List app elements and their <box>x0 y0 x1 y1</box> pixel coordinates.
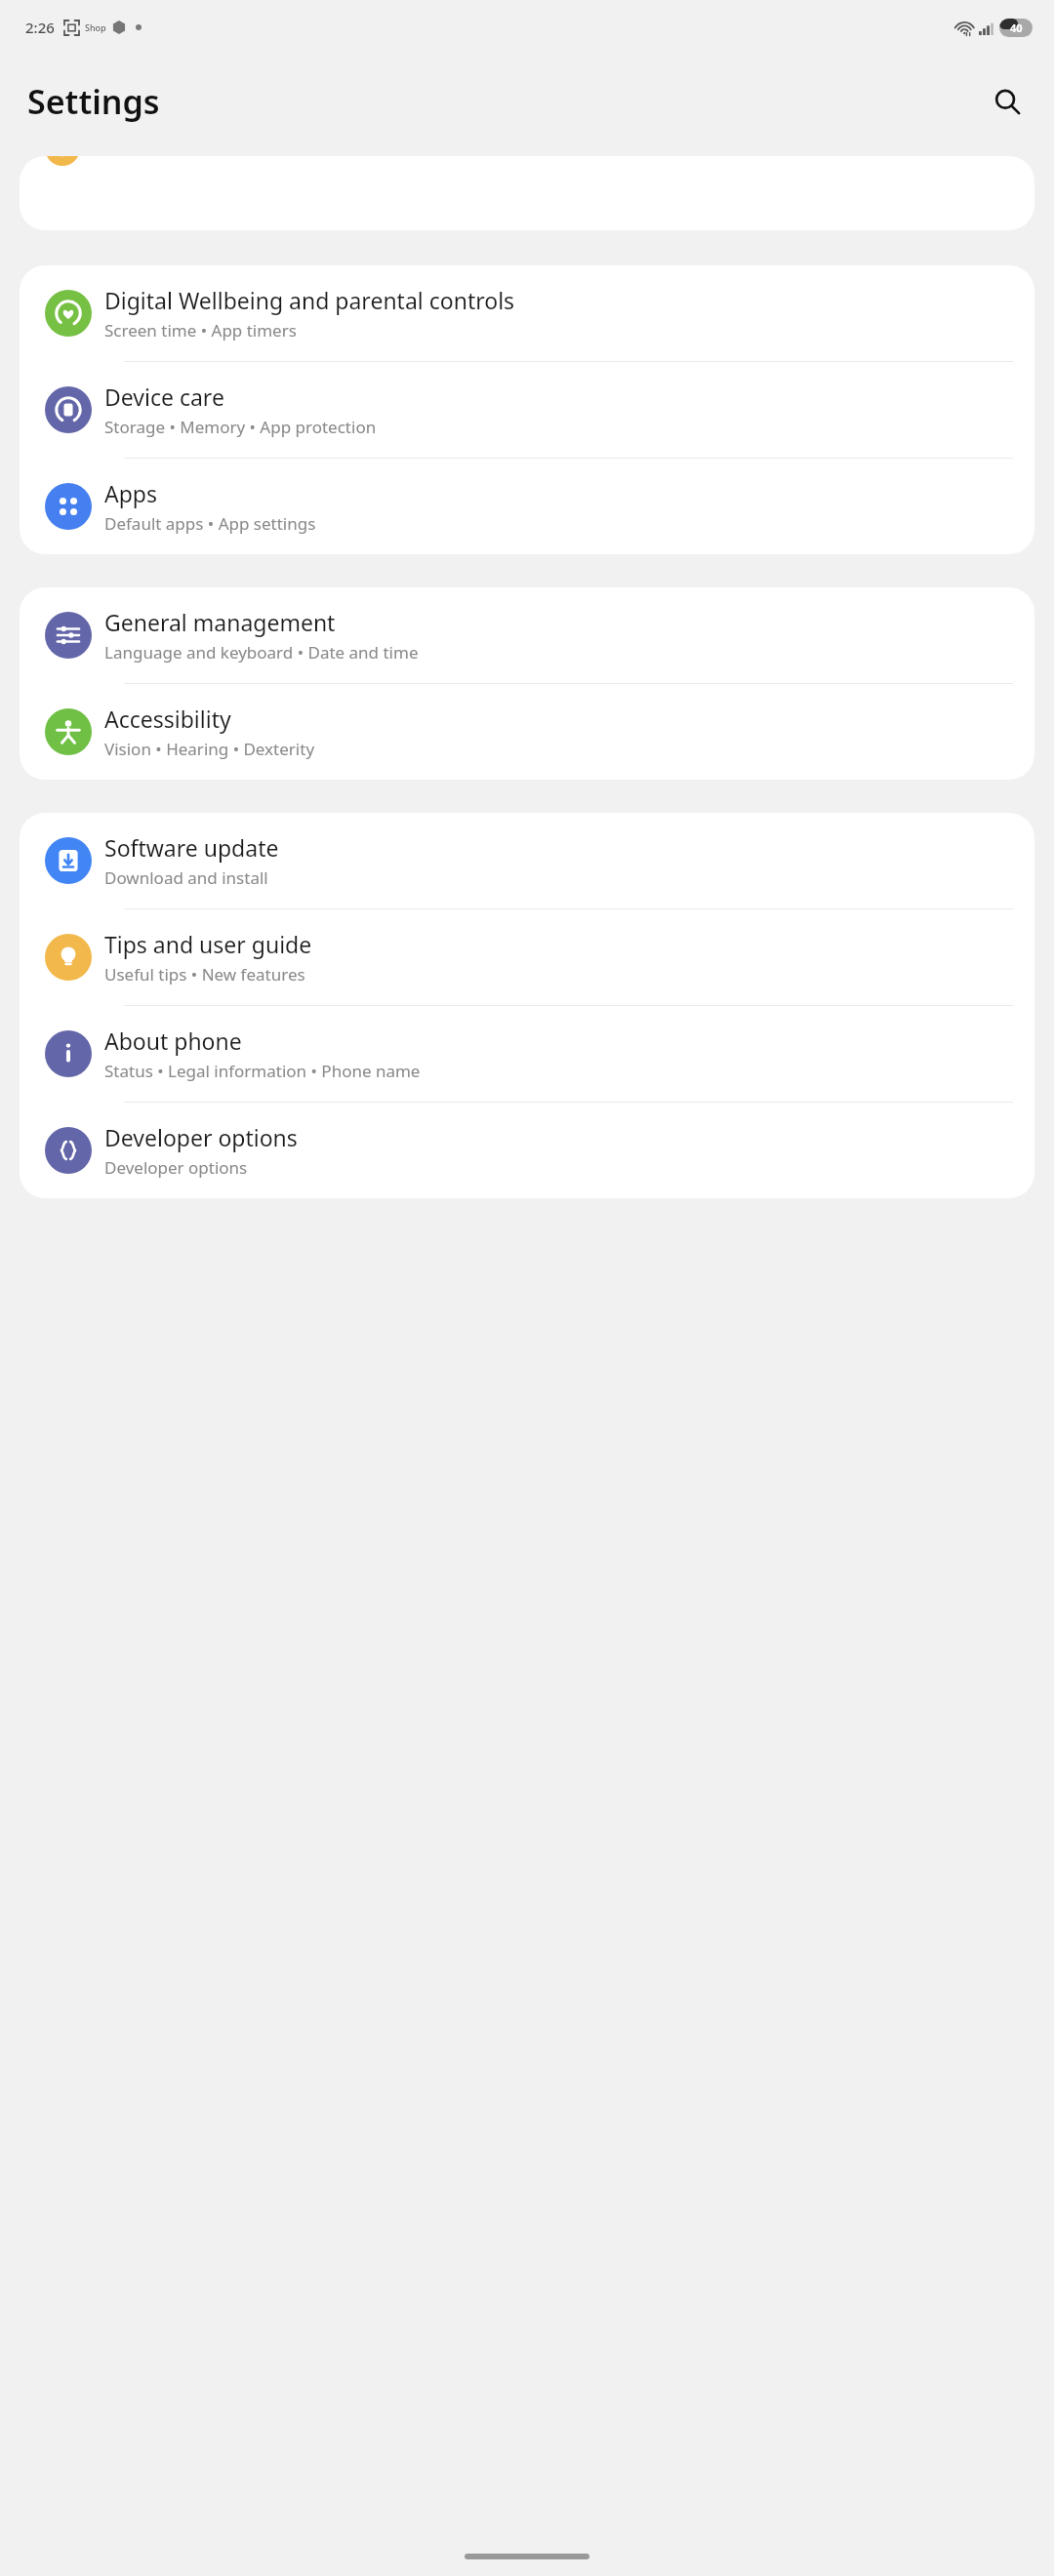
staticText: 2:26 <box>25 18 55 37</box>
staticText: Status • Legal information • Phone name <box>104 1060 421 1082</box>
staticText: Apps <box>104 478 158 508</box>
button[interactable]: About phone <box>20 1006 1034 1102</box>
staticText: Settings <box>27 79 160 124</box>
staticText: Developer options <box>104 1156 248 1179</box>
staticText: Download and install <box>104 866 268 889</box>
button[interactable]: Search <box>982 76 1033 127</box>
button[interactable]: Device care <box>20 362 1034 458</box>
button[interactable]: Tips and user guide <box>20 909 1034 1005</box>
staticText: Shop <box>85 21 106 33</box>
staticText: Default apps • App settings <box>104 512 316 535</box>
staticText: Useful tips • New features <box>104 963 305 986</box>
staticText: General management <box>104 607 336 637</box>
staticText: Software update <box>104 832 279 863</box>
staticText: Language and keyboard • Date and time <box>104 641 419 664</box>
button[interactable]: Accessibility <box>20 684 1034 780</box>
staticText: About phone <box>104 1026 242 1056</box>
button[interactable]: Advanced features <box>20 156 1034 185</box>
staticText: 40 <box>1010 20 1023 35</box>
staticText: Device care <box>104 382 224 412</box>
staticText: Screen time • App timers <box>104 319 297 342</box>
button[interactable]: Digital Wellbeing and parental controls <box>20 265 1034 361</box>
staticText: Storage • Memory • App protection <box>104 416 377 438</box>
staticText: Accessibility <box>104 704 231 734</box>
button[interactable]: General management <box>20 587 1034 683</box>
staticText: Tips and user guide <box>104 929 312 959</box>
staticText: Vision • Hearing • Dexterity <box>104 738 315 760</box>
button[interactable]: Software update <box>20 813 1034 908</box>
button[interactable]: Apps <box>20 459 1034 554</box>
button[interactable]: Developer options <box>20 1103 1034 1198</box>
staticText: Advanced features <box>104 156 302 161</box>
staticText: Developer options <box>104 1122 298 1152</box>
staticText: Digital Wellbeing and parental controls <box>104 285 515 315</box>
